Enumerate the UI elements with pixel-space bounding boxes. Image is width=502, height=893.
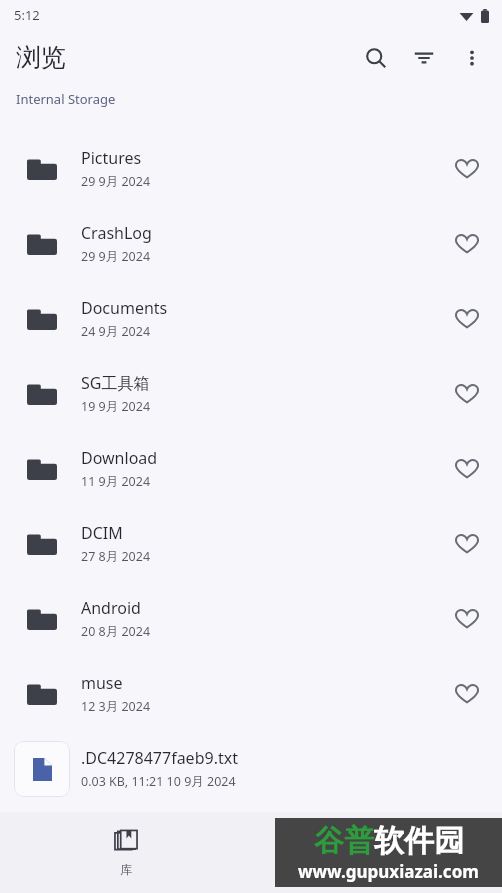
staticText: Android xyxy=(81,597,141,619)
staticText: Pictures xyxy=(81,147,142,169)
staticText: 浏览 xyxy=(16,42,66,73)
button[interactable]: Favorite Pictures xyxy=(440,142,494,196)
staticText: CrashLog xyxy=(81,222,152,244)
staticText: Documents xyxy=(81,297,168,319)
staticText: www.gupuxiazai.com xyxy=(298,860,479,883)
staticText: .DC4278477faeb9.txt xyxy=(81,747,238,769)
staticText: 软件园 xyxy=(374,822,464,860)
button[interactable]: 历史 xyxy=(251,812,502,893)
staticText: 24 9月 2024 xyxy=(81,323,151,340)
button[interactable]: Download xyxy=(0,431,502,506)
button[interactable]: Favorite Documents xyxy=(440,292,494,346)
staticText: 历史 xyxy=(365,862,389,877)
button[interactable]: Internal Storage xyxy=(0,85,502,113)
button[interactable]: SG工具箱 xyxy=(0,356,502,431)
button[interactable]: .DC4278477faeb9.txt xyxy=(0,731,502,806)
button[interactable]: Android xyxy=(0,581,502,656)
button[interactable]: Favorite DCIM xyxy=(440,517,494,571)
staticText: Internal Storage xyxy=(16,90,116,108)
staticText: Download xyxy=(81,447,158,469)
button[interactable]: 库 xyxy=(0,812,251,893)
staticText: 19 9月 2024 xyxy=(81,398,151,415)
button[interactable]: Sort xyxy=(400,34,448,82)
button[interactable]: Pictures xyxy=(0,131,502,206)
staticText: 0.03 KB, 11:21 10 9月 2024 xyxy=(81,773,236,790)
staticText: 29 9月 2024 xyxy=(81,173,151,190)
button[interactable]: Search xyxy=(352,34,400,82)
button[interactable]: DCIM xyxy=(0,506,502,581)
staticText: 库 xyxy=(120,862,132,877)
button[interactable]: Favorite Download xyxy=(440,442,494,496)
button[interactable]: Favorite muse xyxy=(440,667,494,721)
button[interactable]: muse xyxy=(0,656,502,731)
staticText: 29 9月 2024 xyxy=(81,248,151,265)
staticText: DCIM xyxy=(81,522,123,544)
staticText: 谷普 xyxy=(314,822,374,860)
staticText: 11 9月 2024 xyxy=(81,473,151,490)
staticText: 12 3月 2024 xyxy=(81,698,151,715)
button[interactable]: Documents xyxy=(0,281,502,356)
staticText: 5:12 xyxy=(14,6,40,24)
button[interactable]: More options xyxy=(448,34,496,82)
button[interactable]: Favorite CrashLog xyxy=(440,217,494,271)
button[interactable]: Favorite SG工具箱 xyxy=(440,367,494,421)
staticText: SG工具箱 xyxy=(81,372,150,394)
staticText: muse xyxy=(81,672,123,694)
staticText: 27 8月 2024 xyxy=(81,548,151,565)
staticText: 20 8月 2024 xyxy=(81,623,151,640)
button[interactable]: CrashLog xyxy=(0,206,502,281)
button[interactable]: Favorite Android xyxy=(440,592,494,646)
